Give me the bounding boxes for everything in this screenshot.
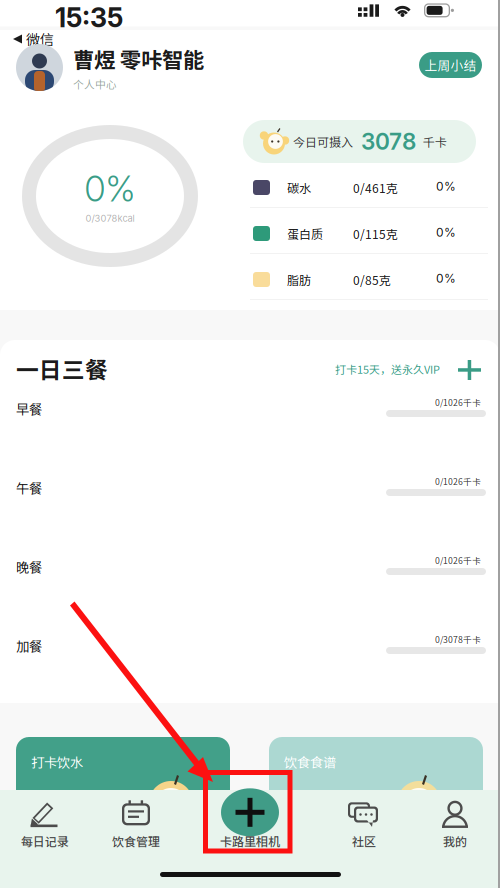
staticText: 碳水	[287, 179, 311, 196]
staticText: 0%	[436, 179, 456, 193]
staticText: 我的	[443, 832, 467, 850]
staticText: 每日记录	[21, 832, 69, 850]
staticText: 卡路里相机	[220, 832, 280, 850]
staticText: 社区	[352, 832, 376, 850]
staticText: 0%	[436, 225, 456, 239]
button[interactable]: 打卡饮水	[0, 737, 230, 837]
button[interactable]: 添加	[0, 340, 481, 380]
staticText: 饮食管理	[112, 832, 160, 850]
button[interactable]: 社区	[0, 790, 409, 848]
button[interactable]: 早餐	[0, 387, 500, 466]
staticText: 0%	[436, 271, 456, 285]
staticText: 0/1026千卡	[435, 554, 481, 566]
staticText: 今日可摄入	[293, 133, 353, 150]
staticText: 3078	[361, 128, 416, 155]
staticText: 0%	[84, 168, 135, 210]
staticText: 0/85克	[353, 271, 391, 288]
staticText: 午餐	[16, 478, 42, 497]
staticText: 加餐	[16, 636, 42, 655]
staticText: 打卡15天，送永久VIP	[335, 361, 440, 377]
button[interactable]: 曹煜 零咔智能	[0, 30, 204, 91]
staticText: 千卡	[423, 133, 447, 150]
staticText: 0/3078kcal	[85, 213, 134, 224]
staticText: 打卡饮水	[31, 752, 83, 771]
button[interactable]: 微信	[0, 30, 73, 47]
staticText: 脂肪	[287, 271, 311, 288]
staticText: 晚餐	[16, 557, 42, 576]
button[interactable]: 每日记录	[0, 790, 90, 848]
staticText: 0/1026千卡	[435, 475, 481, 487]
button[interactable]: 饮食食谱	[0, 737, 483, 837]
staticText: 0/115克	[353, 225, 398, 242]
staticText: 曹煜 零咔智能	[73, 43, 204, 74]
staticText: 蛋白质	[287, 225, 323, 242]
button[interactable]: 我的	[0, 790, 500, 848]
staticText: 饮食食谱	[284, 752, 336, 771]
staticText: 早餐	[16, 399, 42, 418]
staticText: 微信	[26, 29, 54, 49]
button[interactable]: 卡路里相机	[0, 790, 295, 848]
staticText: 0/1026千卡	[435, 396, 481, 408]
button[interactable]: 晚餐	[0, 545, 500, 624]
staticText: 个人中心	[73, 76, 117, 92]
button[interactable]: 上周小结	[0, 30, 482, 78]
staticText: 上周小结	[424, 56, 476, 74]
button[interactable]: 打卡15天，送永久VIP	[0, 340, 440, 377]
button[interactable]: 饮食管理	[0, 790, 181, 848]
staticText: 0/461克	[353, 179, 398, 196]
button[interactable]: 加餐	[0, 624, 500, 703]
staticText: 0/3078千卡	[435, 633, 481, 645]
button[interactable]: 午餐	[0, 466, 500, 545]
staticText: 15:35	[55, 1, 123, 34]
staticText: 一日三餐	[16, 352, 108, 385]
